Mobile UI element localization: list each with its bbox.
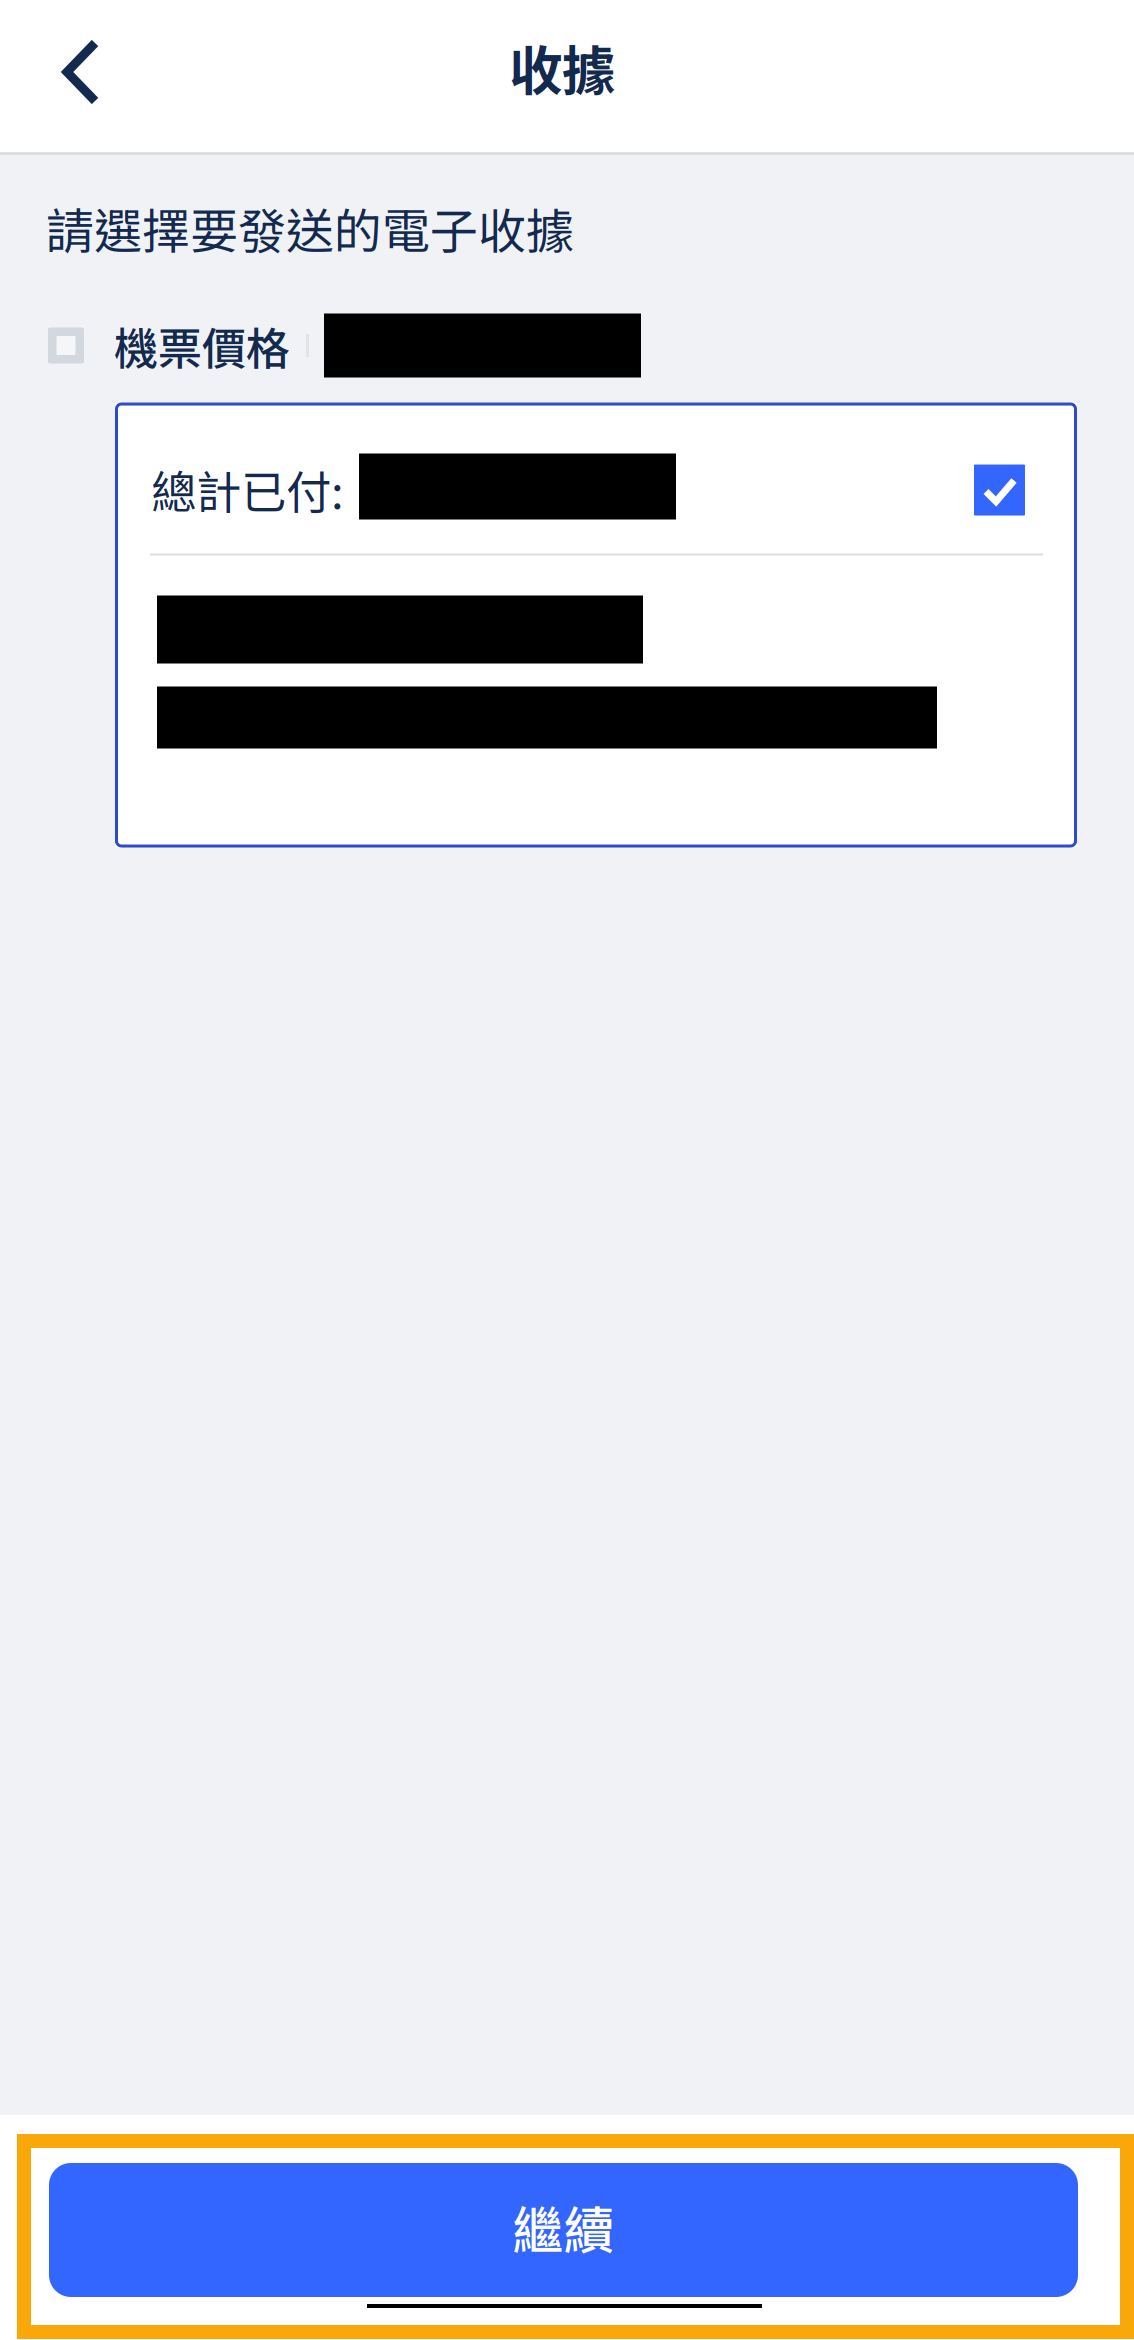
button[interactable]: 總計已付:	[115, 402, 1077, 847]
staticText: 機票價格	[114, 314, 290, 377]
staticText: 收據	[509, 28, 615, 106]
button[interactable]: 繼續	[49, 2163, 1078, 2297]
staticText: 繼續	[512, 2190, 614, 2264]
button[interactable]: 返回	[0, 0, 160, 152]
staticText: 總計已付:	[151, 456, 344, 522]
button[interactable]: 機票價格	[0, 311, 1134, 379]
staticText: 請選擇要發送的電子收據	[46, 193, 574, 262]
